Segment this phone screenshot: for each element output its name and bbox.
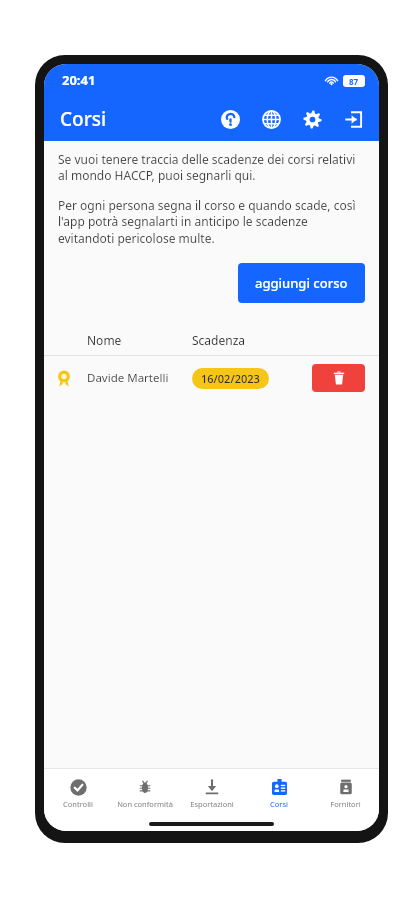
staticText: Fornitori	[330, 799, 361, 809]
staticText: Controlli	[63, 799, 93, 809]
staticText: aggiungi corso	[255, 274, 348, 292]
button[interactable]: Davide Martelli	[44, 356, 379, 400]
button[interactable]: Corsi	[245, 774, 312, 813]
staticText: Esportazioni	[190, 799, 234, 809]
button[interactable]: Esportazioni	[178, 774, 245, 813]
button[interactable]: Settings	[298, 105, 326, 133]
staticText: Scadenza	[192, 332, 246, 348]
button[interactable]: Fornitori	[312, 774, 379, 813]
button[interactable]: Help	[216, 105, 244, 133]
staticText: 20:41	[62, 71, 96, 89]
staticText: 87	[349, 76, 359, 87]
staticText: Corsi	[270, 799, 288, 809]
staticText: Davide Martelli	[87, 370, 169, 386]
button[interactable]: Controlli	[44, 774, 111, 813]
staticText: Nome	[87, 332, 122, 348]
staticText: Se vuoi tenere traccia delle scadenze de…	[58, 151, 365, 184]
staticText: Corsi	[60, 106, 107, 132]
button[interactable]: Non conformità	[111, 774, 178, 813]
button[interactable]: Logout	[339, 105, 367, 133]
staticText: Non conformità	[117, 799, 173, 809]
button[interactable]: Language	[257, 105, 285, 133]
button[interactable]: Elimina	[312, 364, 365, 392]
staticText: Per ogni persona segna il corso e quando…	[58, 197, 365, 247]
staticText: 16/02/2023	[201, 371, 260, 386]
button[interactable]: aggiungi corso	[238, 263, 365, 303]
